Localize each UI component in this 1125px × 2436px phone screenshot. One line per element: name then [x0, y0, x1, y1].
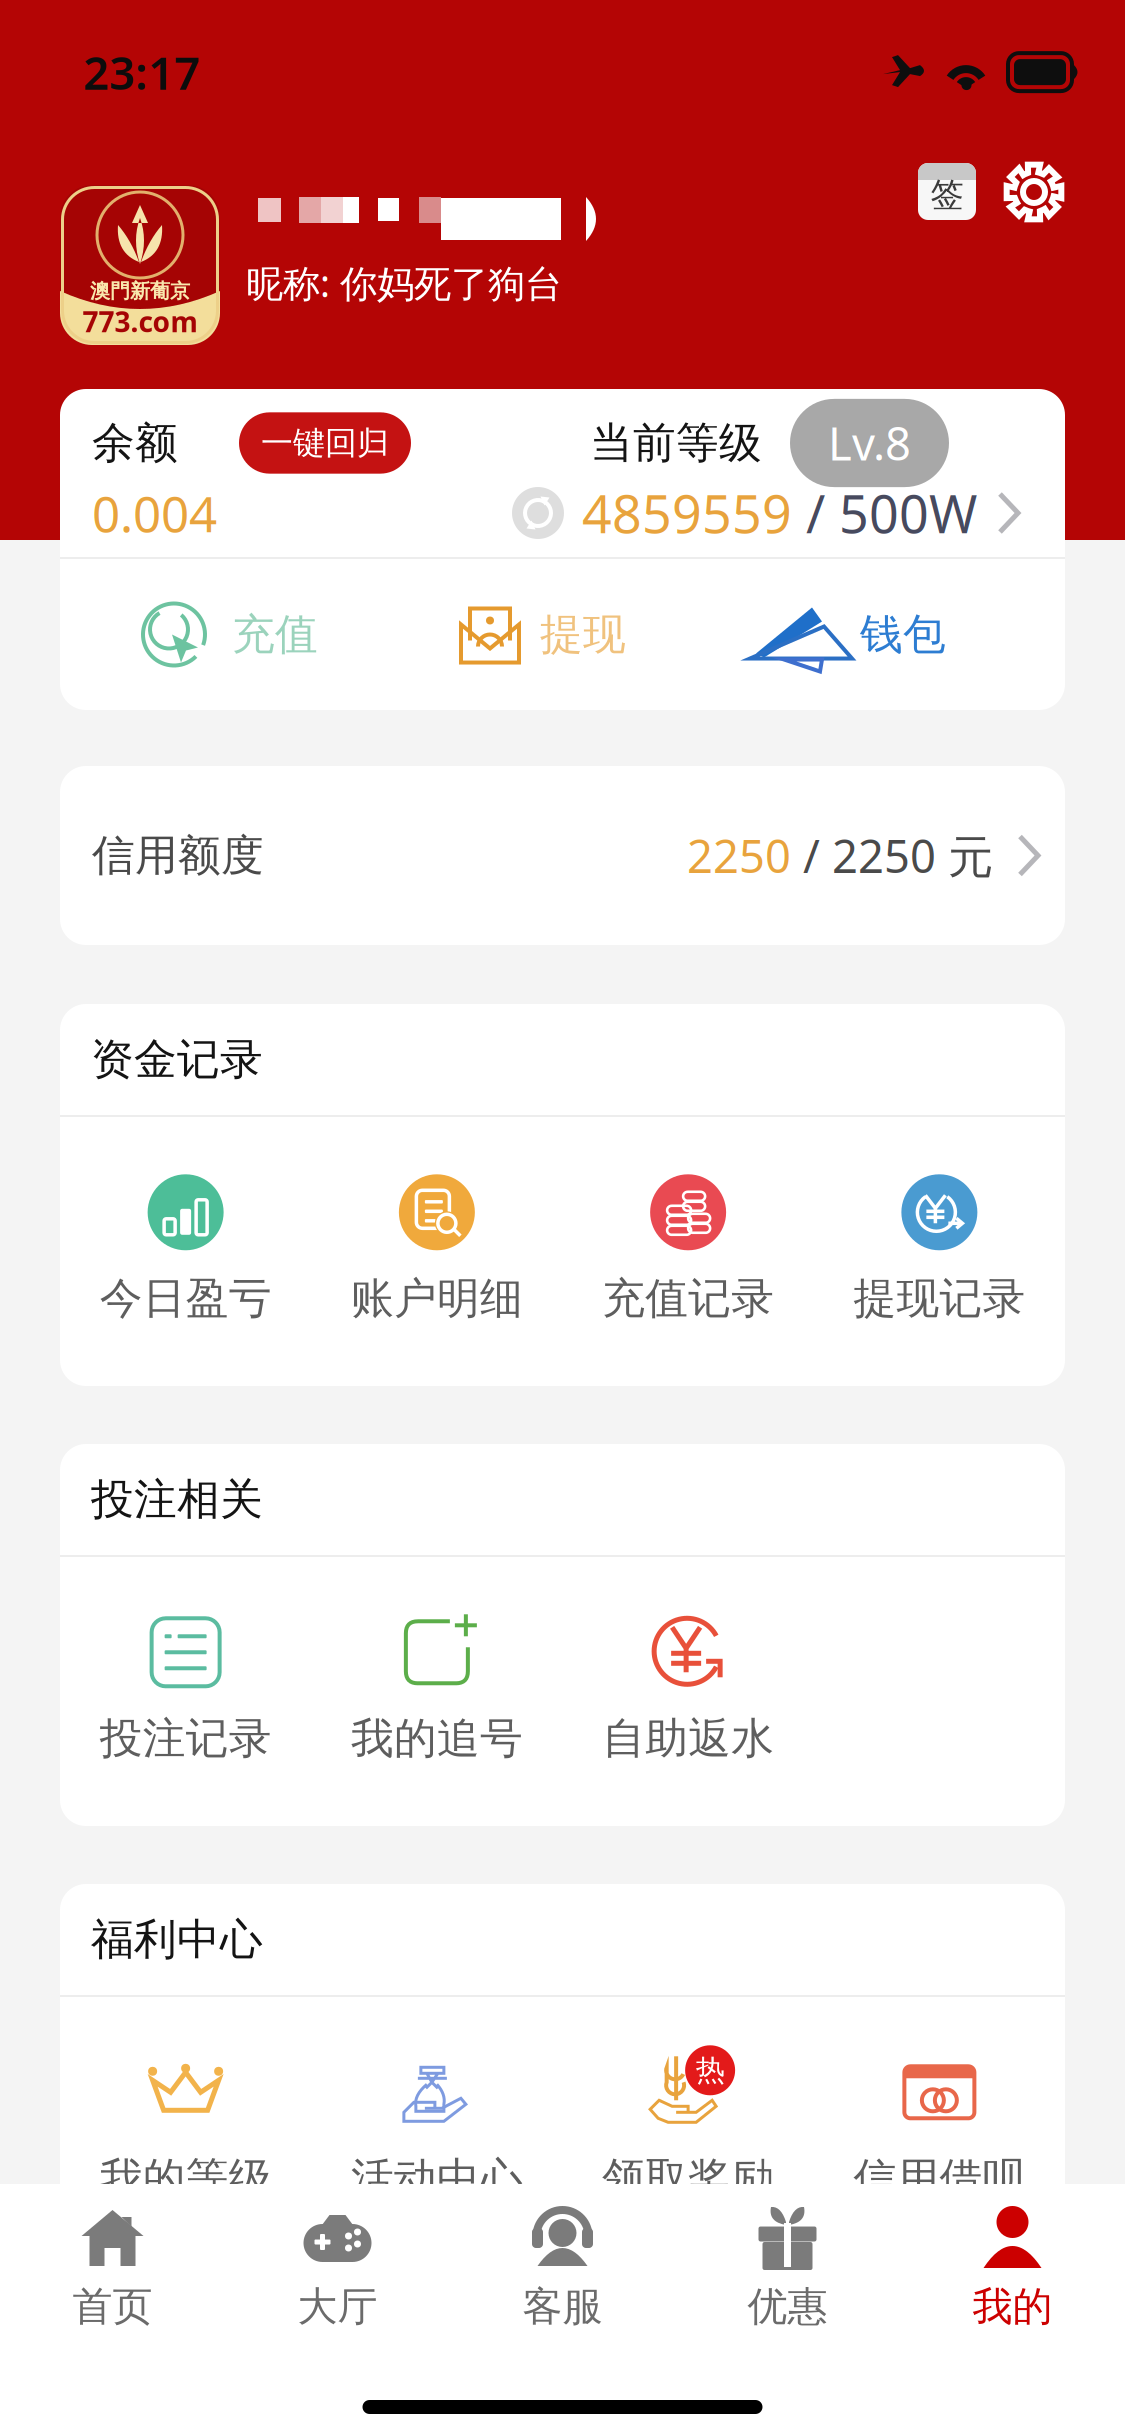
staticText: 账户明细 — [351, 1272, 523, 1325]
staticText: 福利中心 — [91, 1913, 263, 1966]
button[interactable]: 热 — [562, 2061, 814, 2206]
button[interactable]: 自助返水 — [562, 1621, 814, 1766]
staticText: 0.004 — [92, 480, 217, 546]
button[interactable]: 投注记录 — [60, 1621, 311, 1766]
button[interactable]: 优惠 — [675, 2208, 900, 2358]
button[interactable]: 我的 — [900, 2208, 1125, 2358]
staticText: 今日盈亏 — [100, 1272, 272, 1325]
button[interactable]: Settings — [1004, 162, 1064, 222]
staticText: 签 — [930, 174, 963, 215]
button[interactable]: 信用借呗 — [814, 2061, 1065, 2206]
button[interactable]: 我的等级 — [60, 2061, 311, 2206]
button[interactable]: 签到 — [918, 163, 976, 220]
staticText: 充值 — [232, 608, 318, 661]
button[interactable]: 账户明细 — [311, 1181, 562, 1326]
button[interactable]: 充值记录 — [562, 1181, 814, 1326]
staticText: 余额 — [92, 417, 178, 469]
button[interactable]: 客服 — [450, 2208, 675, 2358]
button[interactable]: 一键回归 — [239, 412, 411, 474]
staticText: 投注记录 — [100, 1712, 272, 1765]
staticText: 4859559 — [582, 478, 792, 548]
staticText: 客服 — [522, 2282, 602, 2331]
staticText: 当前等级 — [590, 417, 762, 469]
staticText: Lv.8 — [828, 413, 911, 473]
staticText: 信用借呗 — [853, 2152, 1025, 2205]
button[interactable]: 大厅 — [225, 2208, 450, 2358]
staticText: 我的 — [972, 2282, 1052, 2331]
staticText: 我的等级 — [100, 2152, 272, 2205]
staticText: 昵称: 你妈死了狗台 — [246, 258, 562, 308]
staticText: 资金记录 — [91, 1033, 263, 1086]
staticText: 热 — [696, 2052, 725, 2088]
staticText: 自助返水 — [602, 1712, 774, 1765]
staticText: 一键回归 — [261, 423, 389, 463]
staticText: 钱包 — [860, 608, 946, 661]
button[interactable]: 提现 — [458, 559, 626, 710]
staticText: 大厅 — [297, 2282, 377, 2331]
staticText: 23:17 — [83, 42, 200, 102]
staticText: 充值记录 — [602, 1272, 774, 1325]
button[interactable]: 提现记录 — [814, 1181, 1065, 1326]
staticText: 首页 — [72, 2282, 152, 2331]
staticText: 773.com — [82, 303, 197, 340]
staticText: 我的追号 — [351, 1712, 523, 1765]
staticText: / 2250 元 — [791, 825, 993, 886]
button[interactable]: 活动中心 — [311, 2061, 562, 2206]
staticText: 2250 — [687, 825, 791, 886]
button[interactable]: 我的追号 — [311, 1621, 562, 1766]
staticText: 提现 — [540, 608, 626, 661]
staticText: 优惠 — [747, 2282, 827, 2331]
staticText: 活动中心 — [351, 2152, 523, 2205]
staticText: 投注相关 — [91, 1473, 263, 1526]
button[interactable]: 信用额度 — [60, 766, 1065, 945]
button[interactable]: 今日盈亏 — [60, 1181, 311, 1326]
staticText: / 500W — [792, 478, 977, 548]
staticText: 领取奖励 — [602, 2152, 774, 2205]
button[interactable]: 充值 — [140, 559, 318, 710]
staticText: 信用额度 — [92, 829, 264, 882]
button[interactable]: 签到 — [918, 163, 976, 220]
staticText: 提现记录 — [853, 1272, 1025, 1325]
staticText: 澳門新葡京 — [90, 279, 190, 303]
button[interactable]: 钱包 — [750, 559, 946, 710]
button[interactable]: 首页 — [0, 2208, 225, 2358]
